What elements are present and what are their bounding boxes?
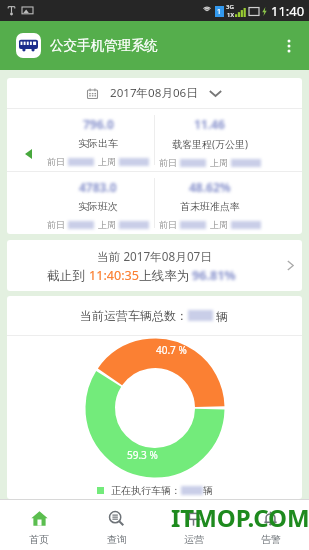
- staticText: 前日: [159, 157, 177, 168]
- staticText: 截止到: [47, 267, 89, 284]
- staticText: 11.46: [194, 116, 225, 132]
- staticText: 11:40: [271, 2, 305, 20]
- staticText: 载客里程(万公里): [172, 137, 248, 151]
- staticText: ITMOP.COM: [171, 501, 309, 534]
- button[interactable]: 告警: [232, 500, 309, 550]
- staticText: 上周: [98, 156, 116, 167]
- button[interactable]: 2017年08月06日: [7, 78, 302, 108]
- staticText: 实际出车: [78, 137, 118, 150]
- staticText: 上线率为: [139, 268, 190, 284]
- staticText: 告警: [261, 533, 281, 546]
- staticText: 辆: [203, 484, 213, 497]
- staticText: 96.81%: [192, 267, 236, 284]
- button[interactable]: 4783.0: [42, 172, 154, 230]
- button[interactable]: 796.0: [42, 109, 154, 167]
- button[interactable]: 当前 2017年08月07日: [7, 240, 302, 291]
- staticText: 公交手机管理系统: [50, 37, 158, 54]
- staticText: 辆: [213, 308, 229, 324]
- staticText: 上周: [210, 157, 228, 168]
- staticText: 运营: [184, 533, 204, 546]
- staticText: 4783.0: [79, 179, 117, 195]
- button[interactable]: 首页: [0, 500, 78, 550]
- staticText: 40.7 %: [156, 343, 187, 357]
- staticText: 首页: [29, 533, 49, 546]
- staticText: 1: [217, 7, 222, 17]
- staticText: 3G: [226, 3, 234, 11]
- staticText: 1X: [227, 11, 234, 19]
- staticText: 48.62%: [189, 179, 231, 195]
- staticText: 上周: [210, 219, 228, 230]
- staticText: 前日: [47, 219, 65, 230]
- staticText: 11:40:35: [89, 267, 139, 284]
- staticText: 前日: [159, 219, 177, 230]
- staticText: 首末班准点率: [180, 200, 240, 213]
- staticText: 当前 2017年08月07日: [97, 248, 212, 264]
- staticText: 59.3 %: [127, 448, 158, 462]
- button[interactable]: 运营: [155, 500, 232, 550]
- staticText: 实际班次: [78, 200, 118, 213]
- staticText: 正在执行车辆：: [111, 484, 181, 497]
- staticText: 796.0: [83, 116, 114, 132]
- staticText: 查询: [107, 533, 127, 546]
- button[interactable]: 48.62%: [154, 172, 265, 230]
- button[interactable]: 11.46: [154, 109, 265, 168]
- staticText: 前日: [47, 156, 65, 167]
- button[interactable]: 查询: [78, 500, 155, 550]
- button[interactable]: More options: [269, 26, 309, 66]
- staticText: 当前运营车辆总数：: [80, 308, 188, 323]
- staticText: 上周: [98, 219, 116, 230]
- staticText: 2017年08月06日: [110, 85, 198, 101]
